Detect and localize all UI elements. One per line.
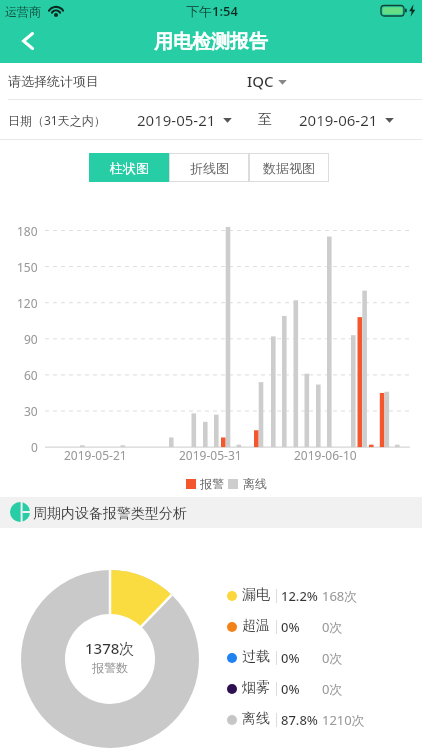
staticText: 0次: [322, 649, 343, 667]
staticText: 0%: [281, 618, 300, 636]
staticText: 运营商: [5, 4, 41, 19]
staticText: 12.2%: [281, 587, 318, 605]
staticText: 报警: [200, 476, 224, 491]
button[interactable]: [0, 63, 422, 100]
staticText: 1378次: [85, 638, 135, 658]
staticText: 90: [24, 331, 38, 347]
button[interactable]: [285, 103, 400, 137]
staticText: 1210次: [322, 711, 365, 729]
staticText: 2019-06-21: [299, 110, 378, 130]
staticText: 120: [17, 295, 38, 311]
staticText: 2019-05-31: [179, 447, 242, 463]
staticText: 87.8%: [281, 711, 318, 729]
staticText: 0: [31, 439, 38, 455]
staticText: 过载: [242, 648, 270, 666]
staticText: 请选择统计项目: [8, 73, 99, 89]
staticText: 60: [24, 367, 38, 383]
staticText: 离线: [243, 476, 267, 491]
button[interactable]: 数据视图: [249, 153, 329, 182]
staticText: 烟雾: [242, 679, 270, 697]
staticText: 漏电: [242, 586, 270, 604]
staticText: 150: [17, 259, 38, 275]
button[interactable]: [14, 28, 42, 54]
staticText: 0次: [322, 680, 343, 698]
button[interactable]: 折线图: [169, 153, 249, 182]
staticText: 周期内设备报警类型分析: [33, 505, 187, 523]
button[interactable]: [120, 103, 235, 137]
staticText: 180: [17, 223, 38, 239]
staticText: 折线图: [190, 160, 229, 176]
staticText: 2019-05-21: [137, 110, 216, 130]
staticText: 离线: [242, 710, 270, 728]
staticText: 至: [258, 111, 272, 129]
button[interactable]: 柱状图: [89, 153, 169, 182]
staticText: 日期（31天之内）: [8, 112, 106, 128]
staticText: 下午1:54: [186, 2, 238, 20]
staticText: 用电检测报告: [154, 30, 268, 54]
staticText: IQC: [247, 71, 274, 91]
staticText: 数据视图: [263, 160, 315, 176]
staticText: 168次: [322, 587, 358, 605]
staticText: 超温: [242, 617, 270, 635]
staticText: 0次: [322, 618, 343, 636]
staticText: 2019-06-10: [294, 447, 357, 463]
staticText: 0%: [281, 680, 300, 698]
staticText: 30: [24, 403, 38, 419]
staticText: 0%: [281, 649, 300, 667]
staticText: 柱状图: [110, 160, 149, 176]
staticText: 2019-05-21: [64, 447, 127, 463]
staticText: 报警数: [92, 660, 128, 675]
